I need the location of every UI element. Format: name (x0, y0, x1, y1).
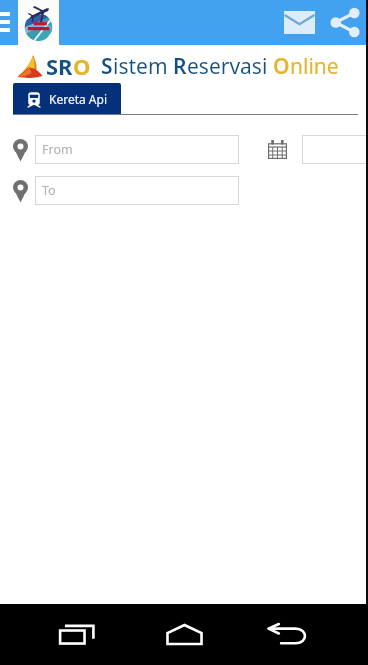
staticText: nline (290, 52, 339, 81)
button[interactable]: Menu (0, 0, 17, 45)
button[interactable]: From (35, 135, 239, 164)
button[interactable]: Share (322, 0, 367, 45)
staticText: Kereta Api (49, 91, 108, 107)
staticText: SR (46, 51, 73, 81)
button[interactable]: Recents (42, 604, 112, 665)
button[interactable] (302, 135, 368, 164)
staticText: R (173, 52, 187, 81)
button[interactable]: Back (251, 604, 321, 665)
button[interactable]: Mail (277, 0, 322, 45)
staticText: eservasi (187, 52, 273, 81)
staticText: O (273, 52, 290, 81)
staticText: O (73, 51, 91, 81)
staticText: istem (113, 52, 173, 81)
button[interactable]: Kereta Api (13, 83, 121, 114)
staticText: To (42, 182, 56, 199)
staticText: S (101, 52, 113, 81)
button[interactable]: Home (149, 604, 219, 665)
button[interactable]: To (35, 176, 239, 205)
staticText: From (42, 141, 73, 158)
